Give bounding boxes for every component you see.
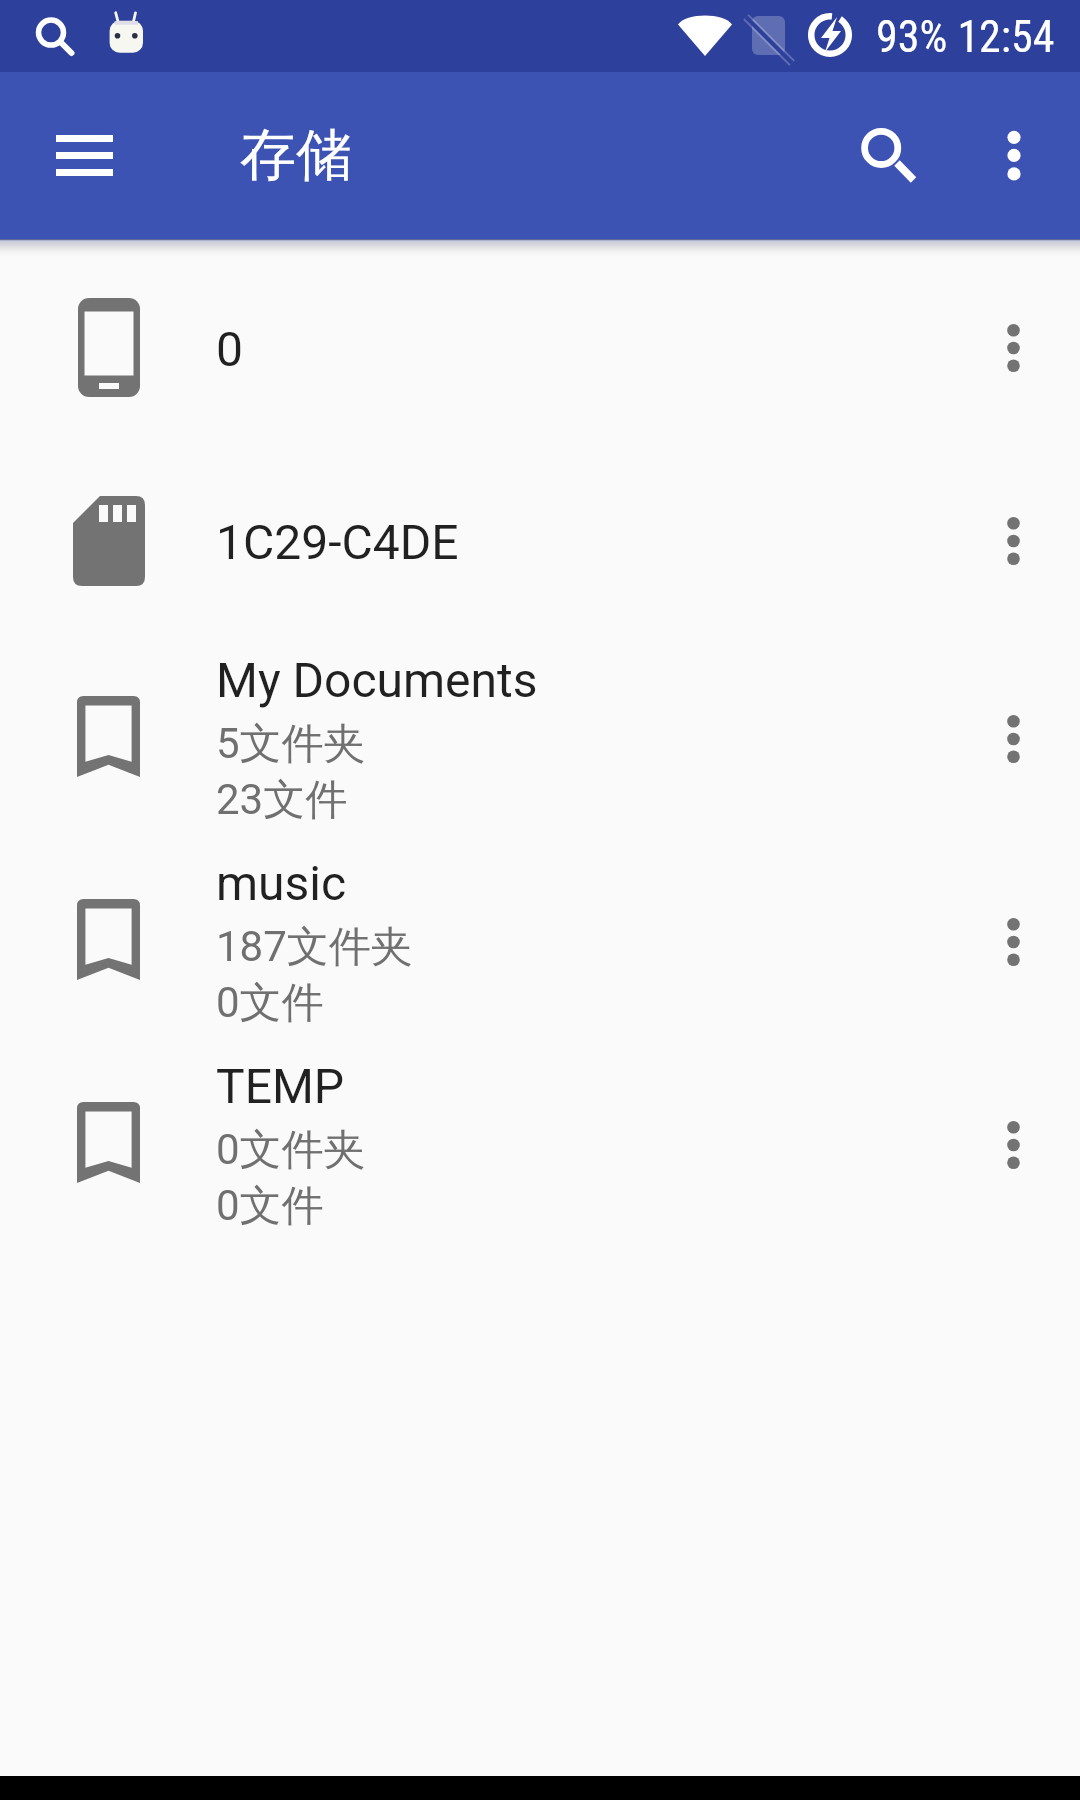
button[interactable]: Search (825, 100, 937, 212)
staticText: 5文件夹 (216, 718, 366, 771)
staticText: 93% 12:54 (876, 11, 1055, 63)
button[interactable]: TEMP (0, 1043, 1080, 1246)
button[interactable]: Open navigation drawer (28, 99, 140, 211)
staticText: 0文件 (216, 977, 324, 1030)
button[interactable]: music (0, 840, 1080, 1043)
button[interactable]: 0 (0, 251, 1080, 444)
staticText: music (216, 855, 347, 911)
staticText: 0文件夹 (216, 1124, 366, 1177)
staticText: 存储 (240, 120, 352, 191)
button[interactable]: More options (944, 673, 1076, 805)
staticText: 187文件夹 (216, 921, 413, 974)
staticText: 0文件 (216, 1180, 324, 1233)
button[interactable]: More options (958, 100, 1070, 212)
staticText: 23文件 (216, 774, 348, 827)
staticText: 0 (216, 321, 243, 377)
staticText: 1C29-C4DE (216, 514, 459, 570)
button[interactable]: More options (944, 282, 1076, 414)
button[interactable]: 1C29-C4DE (0, 444, 1080, 637)
button[interactable]: More options (944, 475, 1076, 607)
button[interactable]: More options (944, 876, 1076, 1008)
button[interactable]: My Documents (0, 637, 1080, 840)
staticText: TEMP (216, 1058, 345, 1114)
staticText: My Documents (216, 652, 538, 708)
button[interactable]: More options (944, 1079, 1076, 1211)
